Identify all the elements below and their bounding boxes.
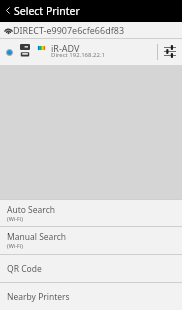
button[interactable]: Printer settings: [158, 39, 182, 65]
button[interactable]: Select Printer: [0, 0, 182, 22]
staticText: Auto Search: [7, 204, 56, 216]
button[interactable]: Manual Search: [0, 227, 182, 254]
button[interactable]: Auto Search: [0, 200, 182, 226]
button[interactable]: Nearby Printers: [0, 283, 182, 310]
button[interactable]: QR Code: [0, 255, 182, 282]
staticText: DIRECT-e9907e6cfe66df83: [13, 24, 125, 36]
staticText: Nearby Printers: [7, 291, 70, 303]
staticText: (Wi-Fi): [7, 215, 23, 222]
staticText: iR-ADV: [51, 42, 80, 54]
button[interactable]: DIRECT-e9907e6cfe66df83: [0, 22, 182, 38]
button[interactable]: iR-ADV: [0, 39, 157, 65]
staticText: (Wi-Fi): [7, 242, 23, 249]
staticText: Manual Search: [7, 231, 67, 243]
staticText: Select Printer: [14, 4, 80, 18]
staticText: Direct 192.168.22.1: [51, 51, 105, 59]
staticText: QR Code: [7, 263, 42, 275]
